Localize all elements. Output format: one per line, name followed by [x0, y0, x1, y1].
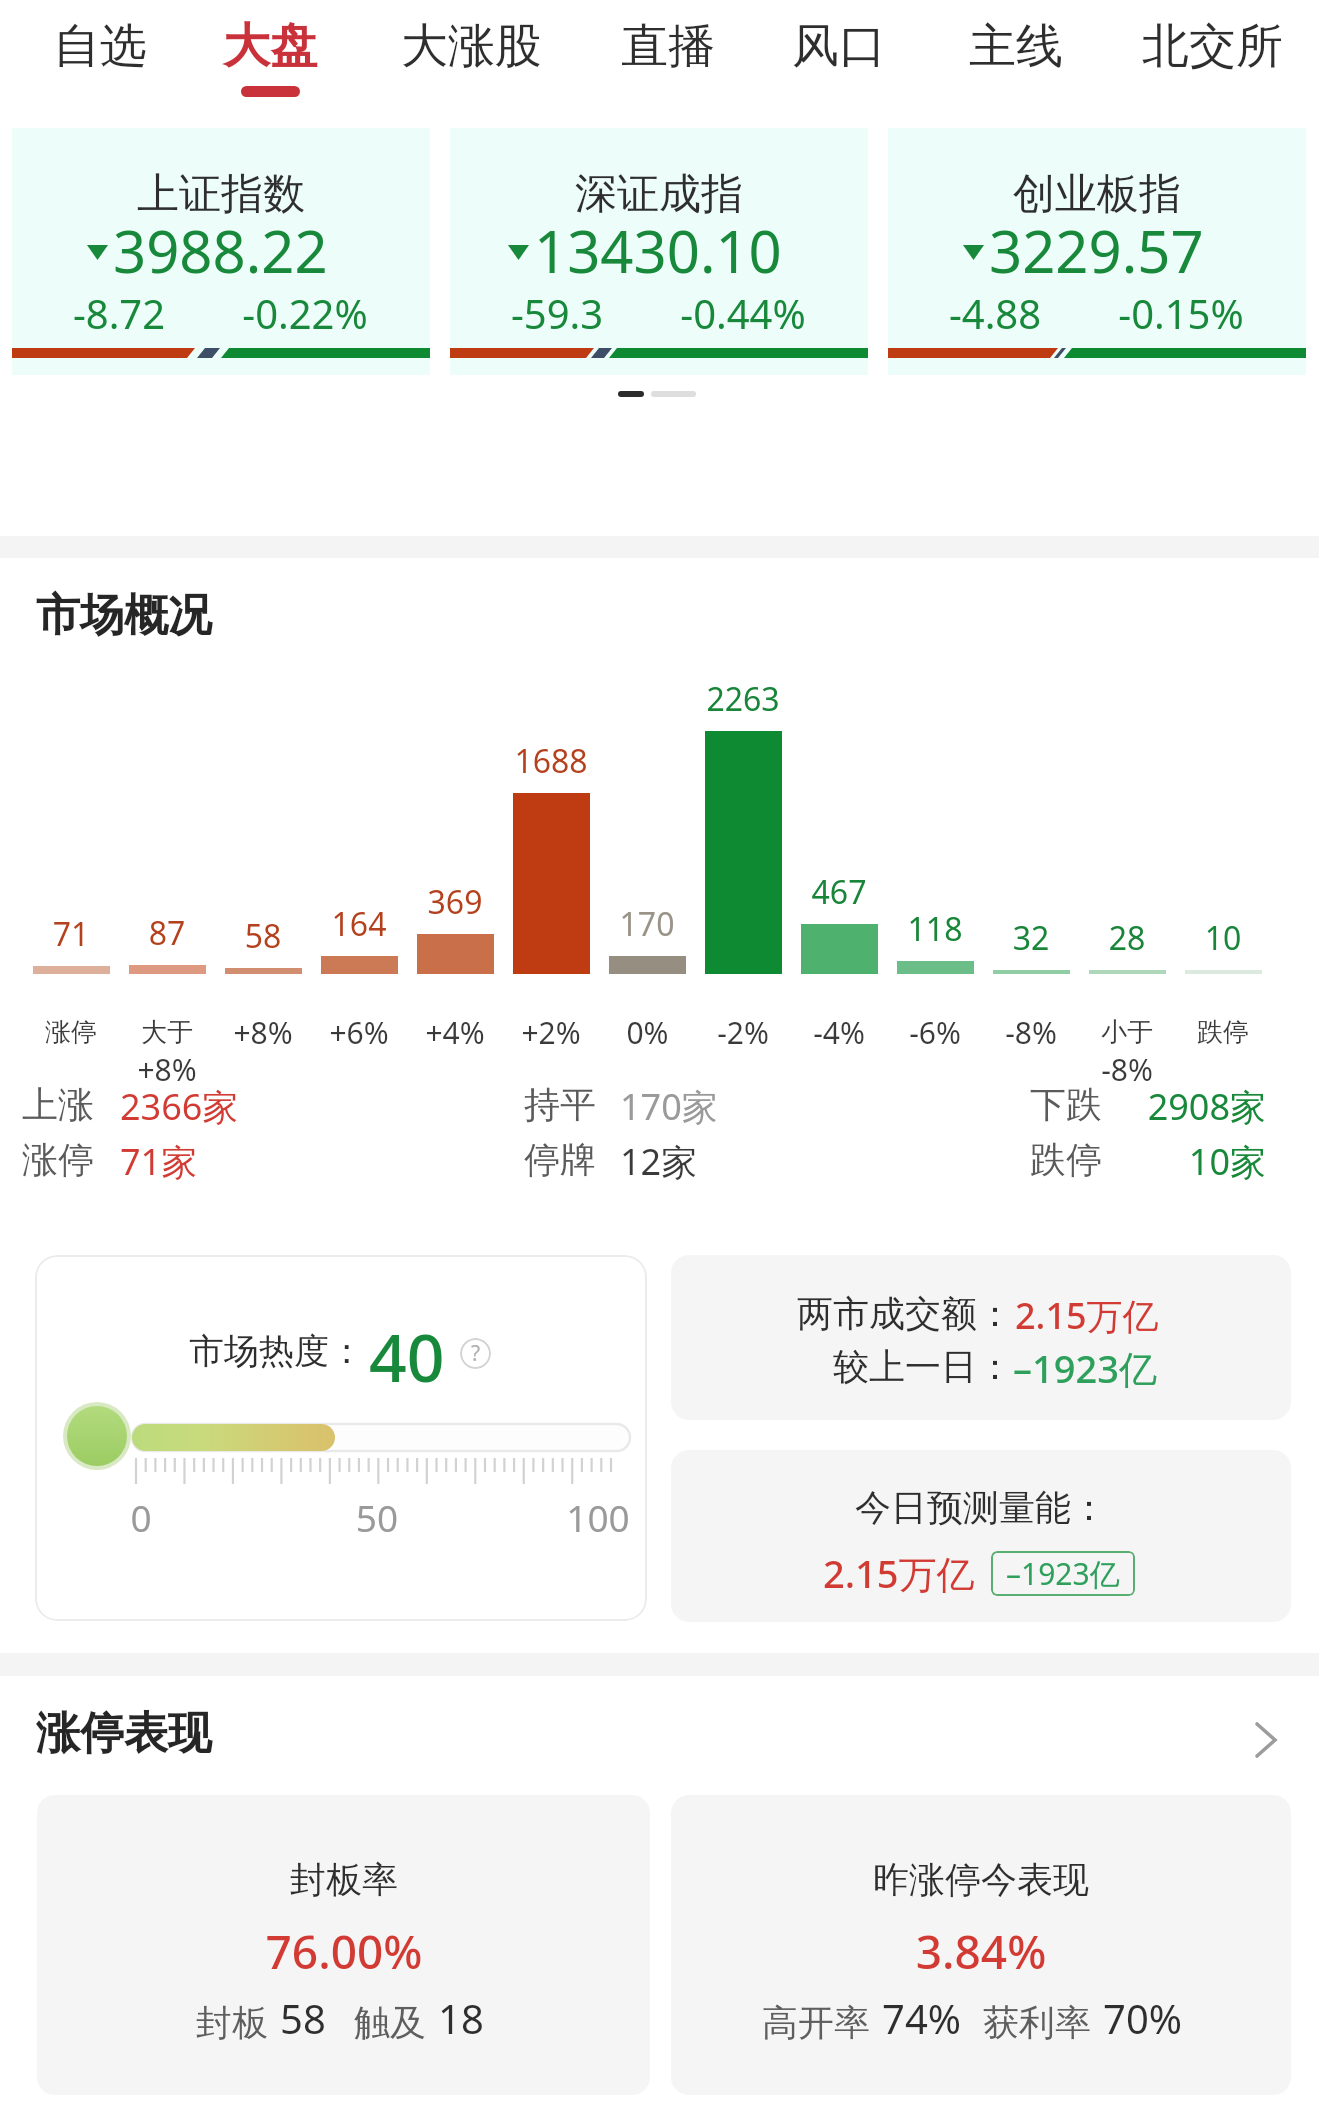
staticText: 跌停 — [1030, 1137, 1102, 1182]
staticText: 风口 — [792, 17, 886, 76]
staticText: ? — [471, 1339, 481, 1368]
staticText: 13430.10 — [534, 211, 782, 290]
staticText: 100 — [538, 1492, 647, 1542]
staticText: 58 — [163, 914, 363, 958]
staticText: 直播 — [621, 17, 715, 76]
staticText: 市场概况 — [36, 588, 212, 643]
staticText: 70% — [1103, 1991, 1182, 2045]
staticText: +8% — [137, 1049, 197, 1090]
staticText: 跌停 — [1197, 1016, 1249, 1049]
staticText: 深证成指 — [450, 168, 868, 221]
button[interactable]: 市场热度： — [35, 1255, 647, 1621]
staticText: 170家 — [620, 1082, 718, 1131]
staticText: 71家 — [120, 1137, 198, 1186]
staticText: -8% — [1005, 1012, 1057, 1053]
staticText: 71 — [0, 912, 171, 956]
staticText: 上涨 — [22, 1082, 94, 1127]
staticText: 0 — [81, 1492, 201, 1542]
staticText: –1923亿 — [1006, 1553, 1120, 1594]
staticText: 10 — [1123, 916, 1319, 960]
staticText: 2366家 — [120, 1082, 239, 1131]
button[interactable]: 深证成指 — [450, 128, 868, 375]
staticText: 封板率 — [144, 1857, 544, 1902]
staticText: +4% — [425, 1012, 485, 1053]
button[interactable]: 创业板指 — [888, 128, 1306, 375]
staticText: 较上一日： — [713, 1344, 1013, 1389]
staticText: 昨涨停今表现 — [751, 1857, 1211, 1902]
staticText: 76.00% — [144, 1920, 544, 1983]
staticText: 74% — [882, 1991, 961, 2045]
staticText: 北交所 — [1142, 17, 1283, 76]
staticText: 164 — [259, 902, 459, 946]
staticText: 467 — [739, 870, 939, 914]
staticText: 2263 — [643, 677, 843, 721]
staticText: 上证指数 — [12, 168, 430, 221]
staticText: 2.15万亿 — [1015, 1291, 1159, 1340]
staticText: 2.15万亿 — [823, 1547, 975, 1599]
staticText: -0.15% — [1061, 286, 1301, 340]
button[interactable]: 自选 — [5, 0, 195, 112]
staticText: 获利率 — [983, 2000, 1091, 2045]
staticText: 自选 — [53, 17, 147, 76]
staticText: 2908家 — [1040, 1082, 1266, 1131]
staticText: 12家 — [620, 1137, 698, 1186]
staticText: 停牌 — [524, 1137, 596, 1182]
staticText: 市场热度： — [189, 1329, 364, 1373]
button[interactable]: 大盘 — [175, 0, 365, 112]
staticText: 3.84% — [781, 1920, 1181, 1983]
button[interactable]: 两市成交额： — [671, 1255, 1291, 1420]
staticText: 50 — [317, 1492, 437, 1542]
staticText: +8% — [233, 1012, 293, 1053]
staticText: 87 — [67, 911, 267, 955]
staticText: +6% — [329, 1012, 389, 1053]
button[interactable]: 说明 — [452, 1330, 498, 1376]
staticText: 3229.57 — [989, 211, 1204, 290]
staticText: 创业板指 — [888, 168, 1306, 221]
staticText: -0.44% — [623, 286, 863, 340]
staticText: 58 — [280, 1991, 326, 2045]
staticText: 118 — [835, 907, 1035, 951]
staticText: 涨停表现 — [36, 1706, 212, 1761]
button[interactable]: 北交所 — [1117, 0, 1307, 112]
staticText: -2% — [717, 1012, 769, 1053]
staticText: 涨停 — [45, 1016, 97, 1049]
staticText: 大涨股 — [401, 17, 542, 76]
button[interactable]: 昨涨停今表现 — [671, 1795, 1291, 2095]
staticText: 28 — [1027, 916, 1227, 960]
staticText: –1923亿 — [1013, 1342, 1157, 1394]
button[interactable]: 风口 — [744, 0, 934, 112]
staticText: 32 — [931, 916, 1131, 960]
staticText: 触及 — [354, 2000, 426, 2045]
staticText: -0.22% — [185, 286, 425, 340]
staticText: -8% — [1101, 1049, 1153, 1090]
button[interactable]: 查看更多涨停表现 — [1221, 1711, 1279, 1769]
staticText: -59.3 — [437, 286, 677, 340]
staticText: -4.88 — [875, 286, 1115, 340]
staticText: 10家 — [1040, 1137, 1266, 1186]
button[interactable]: 上证指数 — [12, 128, 430, 375]
staticText: 主线 — [969, 17, 1063, 76]
button[interactable]: 今日预测量能： — [671, 1450, 1291, 1622]
staticText: +2% — [521, 1012, 581, 1053]
staticText: 大于 — [141, 1016, 193, 1049]
button[interactable]: 主线 — [921, 0, 1111, 112]
staticText: 1688 — [451, 739, 651, 783]
staticText: 下跌 — [1030, 1082, 1102, 1127]
staticText: 小于 — [1101, 1016, 1153, 1049]
staticText: -4% — [813, 1012, 865, 1053]
staticText: 涨停 — [22, 1137, 94, 1182]
staticText: 0% — [626, 1012, 669, 1053]
staticText: 369 — [355, 880, 555, 924]
staticText: 两市成交额： — [713, 1291, 1013, 1336]
staticText: -8.72 — [0, 286, 239, 340]
staticText: 40 — [369, 1311, 445, 1401]
staticText: 18 — [438, 1991, 484, 2045]
button[interactable]: 直播 — [573, 0, 763, 112]
staticText: 持平 — [524, 1082, 596, 1127]
staticText: 3988.22 — [113, 211, 328, 290]
staticText: 今日预测量能： — [771, 1485, 1191, 1530]
button[interactable]: 大涨股 — [376, 0, 566, 112]
button[interactable]: 封板率 — [37, 1795, 650, 2095]
staticText: 高开率 — [762, 2000, 870, 2045]
staticText: 170 — [547, 902, 747, 946]
